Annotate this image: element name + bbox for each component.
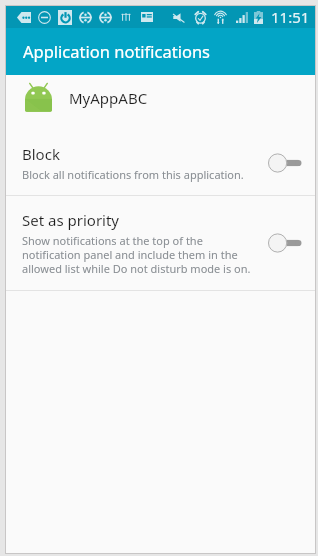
staticText: Show notifications at the top of the not…	[22, 233, 251, 276]
button[interactable]: MyAppABC	[6, 75, 315, 130]
staticText: MyAppABC	[69, 88, 148, 108]
staticText: Application notifications	[23, 40, 211, 62]
button[interactable]: Set as priority	[6, 196, 315, 290]
button[interactable]: Block	[6, 130, 315, 195]
button[interactable]: Block notifications toggle	[268, 153, 302, 173]
button[interactable]: Block notifications toggle	[268, 233, 302, 253]
staticText: Block all notifications from this applic…	[22, 167, 244, 182]
staticText: 11:51	[271, 7, 310, 27]
staticText: Set as priority	[22, 210, 120, 230]
staticText: Block	[22, 144, 60, 164]
